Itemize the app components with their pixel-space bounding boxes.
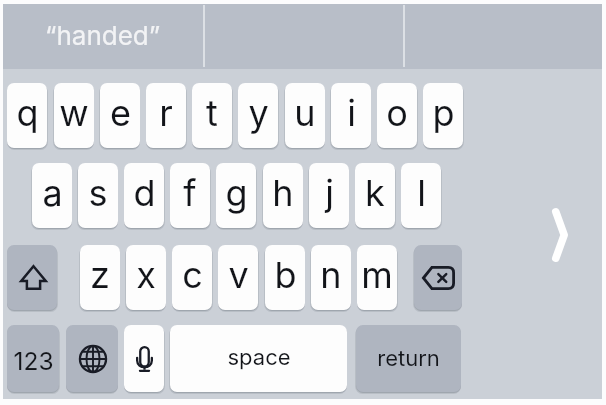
staticText: z xyxy=(90,253,110,297)
button[interactable]: r xyxy=(146,83,186,148)
staticText: x xyxy=(136,253,156,297)
staticText: v xyxy=(228,253,249,297)
staticText: 123 xyxy=(13,346,54,376)
button[interactable]: j xyxy=(309,163,349,228)
button[interactable]: u xyxy=(285,83,325,148)
button[interactable]: z xyxy=(80,245,120,310)
button[interactable]: 123 xyxy=(7,325,59,392)
button[interactable]: “handed” xyxy=(3,4,203,69)
button[interactable]: t xyxy=(192,83,232,148)
button[interactable]: x xyxy=(126,245,166,310)
button[interactable]: w xyxy=(54,83,94,148)
button[interactable]: y xyxy=(238,83,278,148)
staticText: c xyxy=(182,253,203,297)
staticText: m xyxy=(361,253,393,297)
button[interactable]: n xyxy=(311,245,351,310)
button[interactable]: q xyxy=(7,83,47,148)
button[interactable]: i xyxy=(331,83,371,148)
staticText: u xyxy=(294,91,316,135)
staticText: g xyxy=(225,171,248,215)
staticText: n xyxy=(320,253,342,297)
staticText: d xyxy=(133,171,156,215)
staticText: q xyxy=(16,91,39,135)
staticText: l xyxy=(417,171,426,215)
button[interactable]: p xyxy=(423,83,463,148)
button[interactable]: Backspace xyxy=(414,245,462,310)
staticText: “handed” xyxy=(45,20,161,51)
button[interactable]: c xyxy=(172,245,212,310)
button[interactable]: a xyxy=(32,163,72,228)
button[interactable]: d xyxy=(124,163,164,228)
staticText: space xyxy=(227,344,291,371)
button[interactable]: e xyxy=(100,83,140,148)
staticText: e xyxy=(110,91,131,135)
button[interactable]: h xyxy=(263,163,303,228)
button[interactable]: k xyxy=(355,163,395,228)
button[interactable]: o xyxy=(377,83,417,148)
button[interactable]: g xyxy=(216,163,256,228)
button[interactable]: v xyxy=(218,245,258,310)
button[interactable]: return xyxy=(356,325,461,392)
staticText: w xyxy=(59,91,89,135)
staticText: y xyxy=(248,91,269,135)
staticText: return xyxy=(377,345,440,372)
button[interactable]: Next keyboard xyxy=(66,325,118,392)
staticText: b xyxy=(274,253,297,297)
staticText: p xyxy=(432,91,455,135)
button[interactable]: l xyxy=(401,163,441,228)
button[interactable]: Shift xyxy=(7,245,57,310)
button[interactable]: b xyxy=(265,245,305,310)
staticText: t xyxy=(206,91,218,135)
button[interactable]: m xyxy=(357,245,397,310)
staticText: r xyxy=(159,91,173,135)
staticText: a xyxy=(42,171,63,215)
button[interactable]: Dictate xyxy=(124,325,164,392)
staticText: j xyxy=(325,171,334,215)
staticText: k xyxy=(365,171,385,215)
staticText: s xyxy=(88,171,108,215)
button[interactable]: s xyxy=(78,163,118,228)
staticText: o xyxy=(386,91,408,135)
staticText: i xyxy=(347,91,356,135)
staticText: h xyxy=(272,171,294,215)
button[interactable]: Expand keyboard xyxy=(532,196,588,273)
button[interactable]: f xyxy=(170,163,210,228)
button[interactable]: space xyxy=(170,325,347,392)
staticText: f xyxy=(183,171,197,215)
